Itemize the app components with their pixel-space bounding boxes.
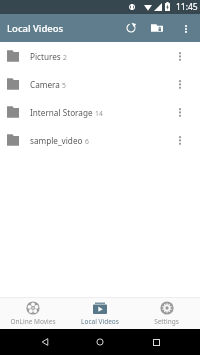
staticText: 14 — [95, 109, 103, 118]
button[interactable]: Pictures — [0, 42, 200, 70]
button[interactable]: Refresh — [121, 18, 141, 38]
button[interactable]: Camera — [0, 70, 200, 98]
button[interactable]: More options — [170, 130, 190, 150]
button[interactable]: More options — [176, 19, 195, 38]
staticText: Internal Storage — [30, 107, 93, 118]
button[interactable]: Local Videos — [66, 298, 133, 329]
staticText: Settings — [154, 317, 179, 326]
button[interactable]: More options — [170, 74, 190, 94]
button[interactable]: Private folder — [147, 18, 167, 38]
staticText: Pictures — [30, 51, 61, 62]
staticText: 2 — [63, 53, 67, 62]
button[interactable]: Recent apps — [145, 331, 167, 353]
staticText: 5 — [62, 81, 66, 90]
button[interactable]: Internal Storage — [0, 98, 200, 126]
staticText: OnLine Movies — [10, 317, 56, 326]
staticText: Local Videos — [7, 22, 64, 35]
staticText: Local Videos — [81, 317, 119, 326]
staticText: Camera — [30, 79, 60, 90]
button[interactable]: OnLine Movies — [0, 298, 66, 329]
staticText: 6 — [85, 137, 89, 146]
button[interactable]: More options — [170, 102, 190, 122]
staticText: 11:45 — [176, 1, 198, 13]
button[interactable]: Settings — [133, 298, 200, 329]
button[interactable]: Home — [89, 331, 111, 353]
button[interactable]: More options — [170, 46, 190, 66]
button[interactable]: Back — [34, 331, 56, 353]
staticText: sample_video — [30, 135, 83, 146]
button[interactable]: sample_video — [0, 126, 200, 154]
